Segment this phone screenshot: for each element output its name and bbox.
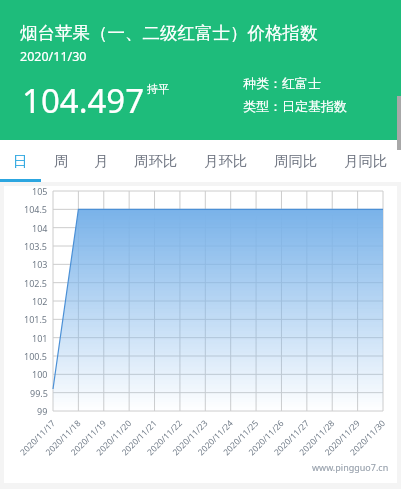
- button[interactable]: 周同比: [261, 140, 331, 182]
- staticText: 烟台苹果（一、二级红富士）价格指数: [20, 22, 318, 44]
- button[interactable]: 日: [0, 140, 41, 182]
- staticText: 种类：红富士: [243, 75, 321, 91]
- button[interactable]: 周环比: [121, 140, 191, 182]
- staticText: 日: [13, 152, 28, 170]
- staticText: 周环比: [134, 152, 178, 170]
- staticText: 周: [54, 152, 69, 170]
- staticText: 2020/11/30: [20, 48, 87, 65]
- button[interactable]: 月环比: [191, 140, 261, 182]
- staticText: 周同比: [274, 152, 318, 170]
- button[interactable]: 月: [81, 140, 121, 182]
- button[interactable]: 周: [41, 140, 81, 182]
- staticText: 月同比: [344, 152, 388, 170]
- staticText: 104.497: [22, 78, 145, 123]
- staticText: 月环比: [204, 152, 248, 170]
- button[interactable]: 月同比: [331, 140, 401, 182]
- staticText: 类型：日定基指数: [243, 98, 347, 114]
- staticText: 持平: [147, 82, 169, 96]
- staticText: 月: [94, 152, 109, 170]
